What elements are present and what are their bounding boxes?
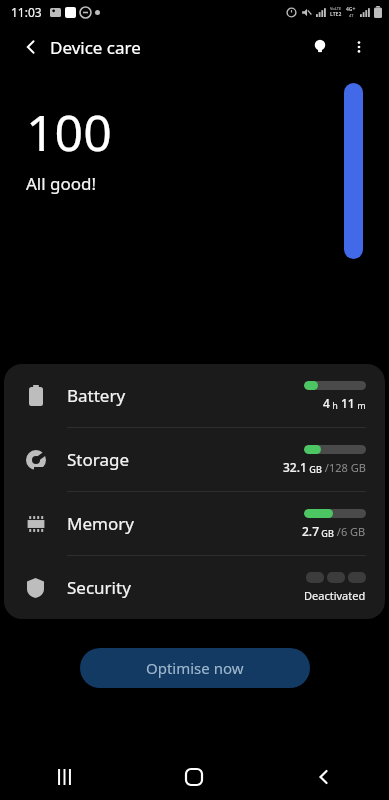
- button[interactable]: Recent apps: [0, 754, 129, 800]
- staticText: Optimise now: [146, 658, 244, 678]
- staticText: All good!: [26, 172, 97, 195]
- staticText: Deactivated: [304, 588, 366, 603]
- staticText: Device care: [50, 36, 141, 59]
- button[interactable]: Tips: [304, 31, 336, 63]
- staticText: /128 GB: [322, 460, 366, 475]
- staticText: 4G+: [346, 6, 356, 13]
- staticText: 32.1: [283, 459, 307, 475]
- staticText: h: [330, 399, 341, 411]
- staticText: Memory: [67, 512, 302, 535]
- staticText: Battery: [67, 384, 304, 407]
- staticText: 100: [26, 98, 112, 166]
- staticText: LTE2: [330, 11, 342, 18]
- button[interactable]: Battery: [4, 364, 385, 427]
- staticText: Storage: [67, 448, 283, 471]
- staticText: VoLTE: [330, 6, 342, 11]
- button[interactable]: Optimise now: [80, 648, 310, 688]
- button[interactable]: Back: [16, 32, 46, 62]
- staticText: 11: [341, 395, 355, 411]
- staticText: 11:03: [11, 4, 42, 20]
- staticText: 4T: [349, 13, 354, 18]
- button[interactable]: Back: [259, 754, 389, 800]
- button[interactable]: Storage: [4, 428, 385, 491]
- staticText: GB: [307, 463, 322, 475]
- staticText: Security: [67, 576, 304, 599]
- staticText: 2.7: [302, 523, 319, 539]
- staticText: 4: [323, 395, 330, 411]
- button[interactable]: Security: [4, 556, 385, 619]
- button[interactable]: Memory: [4, 492, 385, 555]
- staticText: /6 GB: [334, 524, 366, 539]
- staticText: GB: [319, 527, 334, 539]
- button[interactable]: Home: [129, 754, 259, 800]
- staticText: m: [355, 399, 366, 411]
- button[interactable]: More options: [343, 31, 375, 63]
